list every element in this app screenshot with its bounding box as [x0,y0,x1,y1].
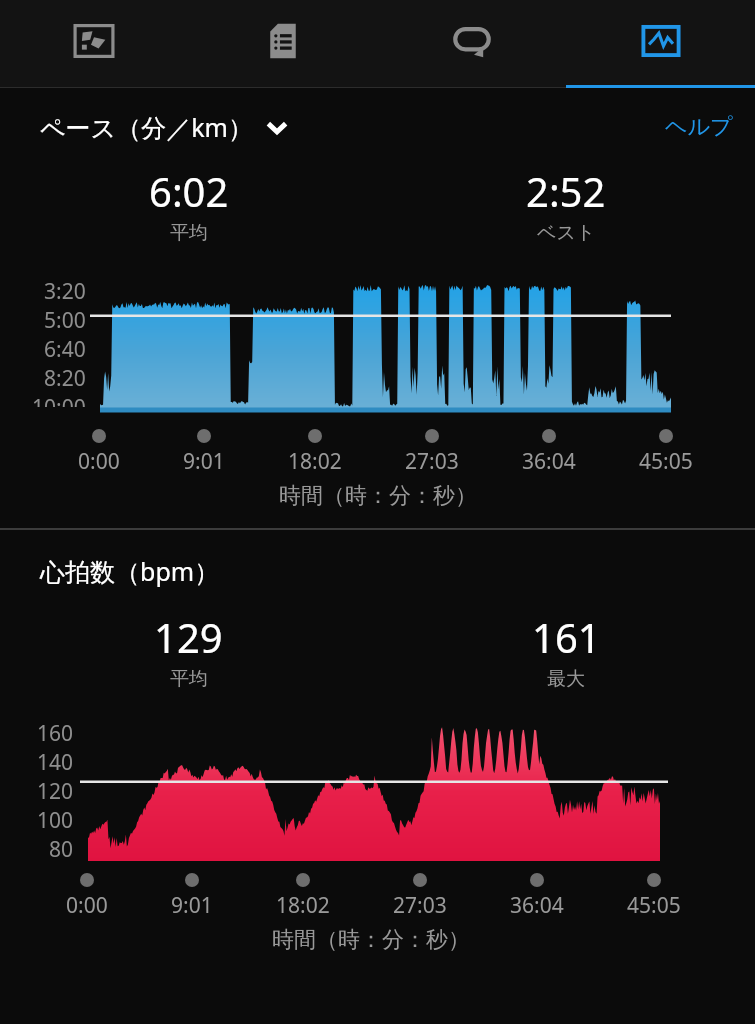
staticText: 平均 [170,221,208,245]
staticText: 45:05 [639,447,693,476]
button[interactable]: Details [188,0,377,88]
staticText: 9:01 [183,447,225,476]
staticText: 36:04 [522,447,576,476]
staticText: 時間（時：分：秒） [272,926,470,954]
staticText: 0:00 [78,447,120,476]
button[interactable]: ヘルプ [665,113,733,141]
staticText: 9:01 [171,891,213,920]
staticText: ベスト [537,221,596,245]
staticText: 129 [154,610,223,664]
staticText: 100 [37,806,74,835]
staticText: ペース（分／km） [40,110,253,144]
staticText: 6:02 [149,164,229,218]
staticText: 27:03 [405,447,459,476]
staticText: 18:02 [288,447,342,476]
staticText: 3:20 [44,277,86,306]
staticText: 120 [37,777,74,806]
staticText: 160 [37,719,74,748]
staticText: 27:03 [393,891,447,920]
button[interactable]: ペース（分／km） [40,110,289,144]
button[interactable]: Laps [377,0,566,88]
staticText: 最大 [547,667,585,691]
staticText: 80 [49,835,74,859]
staticText: 8:20 [44,364,86,393]
staticText: 36:04 [510,891,564,920]
button[interactable]: Map [0,0,188,88]
staticText: 心拍数（bpm） [40,554,220,588]
staticText: 時間（時：分：秒） [279,482,477,510]
staticText: 140 [37,748,74,777]
staticText: 18:02 [276,891,330,920]
staticText: 161 [532,610,601,664]
staticText: 45:05 [627,891,681,920]
staticText: 10:00 [32,393,86,407]
staticText: ヘルプ [665,113,733,141]
staticText: 5:00 [44,306,86,335]
button[interactable]: Charts [566,0,755,88]
staticText: 平均 [170,667,208,691]
staticText: 0:00 [66,891,108,920]
staticText: 2:52 [526,164,606,218]
staticText: 6:40 [44,335,86,364]
